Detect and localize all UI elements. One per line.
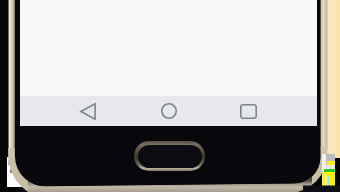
button[interactable]: Home bbox=[150, 96, 188, 126]
button[interactable]: Recents bbox=[229, 96, 267, 126]
button[interactable]: Back bbox=[69, 96, 107, 126]
button[interactable]: Home button bbox=[134, 141, 205, 171]
